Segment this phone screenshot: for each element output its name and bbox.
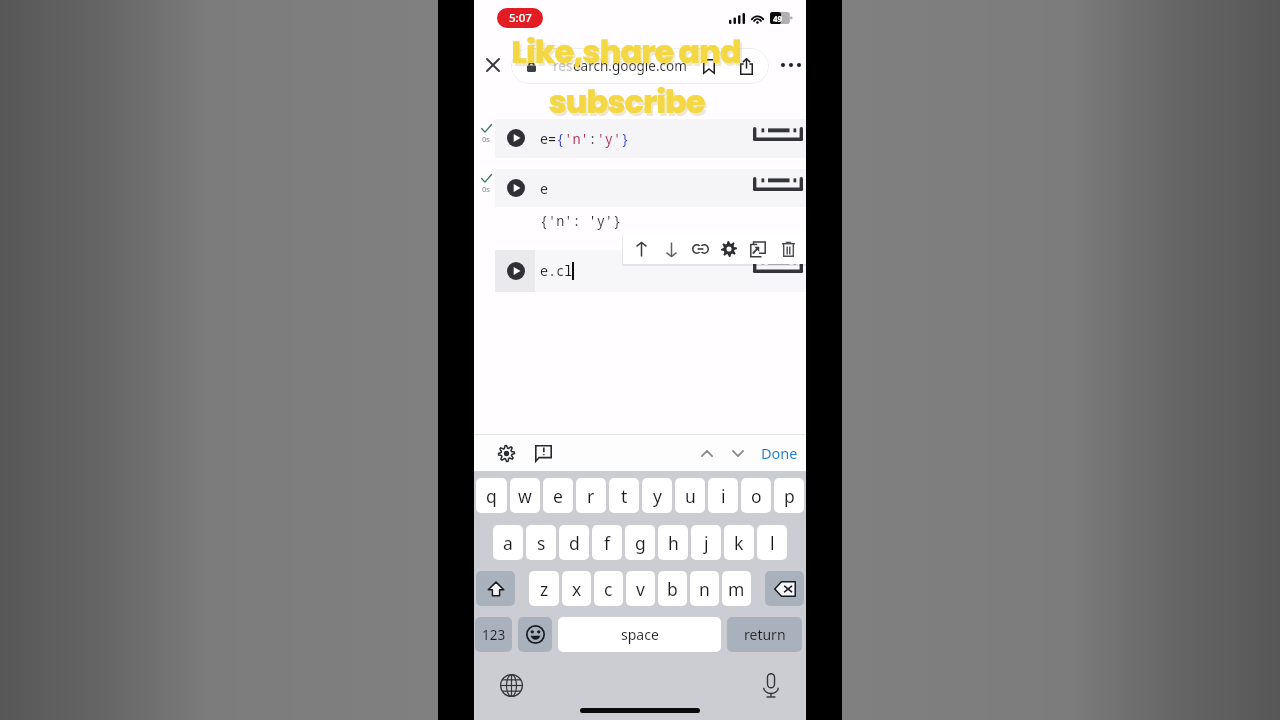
staticText: space xyxy=(621,625,659,644)
button[interactable]: u xyxy=(675,478,705,513)
staticText: return xyxy=(744,625,786,644)
button[interactable]: c xyxy=(594,571,623,606)
button[interactable]: res xyxy=(511,48,769,84)
staticText: res xyxy=(553,57,573,75)
button[interactable]: Numbers xyxy=(475,617,512,652)
staticText: y xyxy=(653,484,662,508)
staticText: t xyxy=(621,484,628,508)
staticText: earch.google.com xyxy=(573,57,687,75)
staticText: subscribe xyxy=(550,82,707,127)
button[interactable]: d xyxy=(559,525,589,560)
staticText: subscribe xyxy=(548,79,705,124)
staticText: f xyxy=(604,531,611,555)
staticText: {'n': 'y'} xyxy=(540,212,621,230)
staticText: c xyxy=(604,577,613,601)
button[interactable]: s xyxy=(526,525,556,560)
button[interactable]: q xyxy=(476,478,507,513)
button[interactable]: Emoji xyxy=(518,617,552,652)
button[interactable]: Next field xyxy=(725,440,751,466)
button[interactable]: Show output xyxy=(753,177,803,191)
button[interactable]: y xyxy=(642,478,672,513)
button[interactable]: p xyxy=(774,478,804,513)
button[interactable]: l xyxy=(757,525,787,560)
button[interactable]: Shift xyxy=(476,571,515,606)
staticText: g xyxy=(635,531,646,555)
staticText: o xyxy=(751,484,762,508)
button[interactable]: a xyxy=(493,525,523,560)
button[interactable]: Run cell xyxy=(507,179,525,197)
staticText: q xyxy=(486,484,497,508)
button[interactable]: Move cell down xyxy=(658,234,684,264)
button[interactable]: Cell settings xyxy=(716,234,742,264)
button[interactable]: z xyxy=(529,571,559,606)
staticText: e={'n':'y'} xyxy=(540,130,630,148)
button[interactable]: Copy link xyxy=(687,234,713,264)
button[interactable]: m xyxy=(722,571,751,606)
button[interactable]: k xyxy=(724,525,754,560)
button[interactable]: o xyxy=(741,478,771,513)
staticText: s xyxy=(537,531,546,555)
staticText: e.cl xyxy=(540,262,573,280)
staticText: x xyxy=(572,577,582,601)
staticText: 123 xyxy=(482,626,506,644)
button[interactable]: x xyxy=(562,571,591,606)
staticText: Done xyxy=(761,443,798,463)
button[interactable]: Dictate xyxy=(757,671,785,699)
button[interactable]: Backspace xyxy=(765,571,804,606)
staticText: h xyxy=(668,531,679,555)
button[interactable]: n xyxy=(690,571,719,606)
button[interactable]: Open in new tab xyxy=(745,234,771,264)
button[interactable]: j xyxy=(691,525,721,560)
button[interactable]: h xyxy=(658,525,688,560)
staticText: Like,share and xyxy=(511,29,741,74)
button[interactable]: e xyxy=(543,478,573,513)
staticText: e xyxy=(553,484,563,508)
staticText: j xyxy=(704,531,709,555)
button[interactable]: Previous field xyxy=(694,440,720,466)
button[interactable]: Done xyxy=(760,439,798,466)
button[interactable]: Move cell up xyxy=(628,234,654,264)
staticText: a xyxy=(503,531,513,555)
staticText: w xyxy=(518,484,532,508)
button[interactable]: i xyxy=(708,478,738,513)
staticText: i xyxy=(721,484,726,508)
button[interactable]: Show output xyxy=(753,127,803,141)
staticText: e xyxy=(540,180,549,198)
button[interactable]: Keyboard settings xyxy=(493,440,519,466)
staticText: Like,share and xyxy=(513,32,743,77)
button[interactable]: v xyxy=(626,571,655,606)
staticText: u xyxy=(685,484,696,508)
staticText: m xyxy=(728,577,745,601)
button[interactable]: Show output xyxy=(753,259,803,273)
staticText: 5:07 xyxy=(509,10,532,26)
staticText: r xyxy=(587,484,595,508)
staticText: l xyxy=(770,531,775,555)
button[interactable]: Run cell xyxy=(507,262,525,280)
button[interactable]: More options xyxy=(777,51,804,78)
button[interactable]: r xyxy=(576,478,606,513)
staticText: d xyxy=(569,531,580,555)
staticText: b xyxy=(667,577,678,601)
button[interactable]: Close xyxy=(479,51,506,78)
staticText: p xyxy=(784,484,795,508)
staticText: 0s xyxy=(482,134,490,144)
button[interactable]: f xyxy=(592,525,622,560)
button[interactable]: g xyxy=(625,525,655,560)
button[interactable]: Return xyxy=(727,617,802,652)
staticText: n xyxy=(699,577,710,601)
button[interactable]: t xyxy=(609,478,639,513)
button[interactable]: Delete cell xyxy=(775,234,801,264)
button[interactable]: Change keyboard xyxy=(497,671,525,699)
staticText: v xyxy=(636,577,645,601)
staticText: 49 xyxy=(773,13,783,24)
staticText: 0s xyxy=(482,184,490,194)
staticText: k xyxy=(734,531,744,555)
staticText: z xyxy=(540,577,549,601)
button[interactable]: space xyxy=(558,617,721,652)
button[interactable]: Run cell xyxy=(507,129,525,147)
button[interactable]: w xyxy=(510,478,540,513)
button[interactable]: Report issue xyxy=(530,440,556,466)
button[interactable]: b xyxy=(658,571,687,606)
